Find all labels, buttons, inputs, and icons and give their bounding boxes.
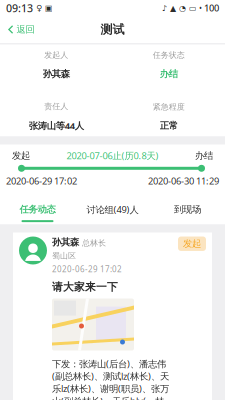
staticText: 孙其森 [43,68,70,80]
staticText: 总林长 [82,238,106,248]
staticText: 测试 [100,22,124,37]
staticText: 发起 [12,150,30,161]
staticText: 讨论组(49)人 [86,203,138,216]
staticText: 2020-06-30 11:29 [148,175,219,187]
staticText: 2020-06-29 17:02 [6,175,77,187]
staticText: 任务动态 [19,204,55,215]
staticText: 发起人 [44,50,68,60]
staticText: 100 [202,2,219,14]
staticText: 2020-06-29 17:02 [52,264,122,274]
staticText: 2020-07-06止(历0.8天) [66,149,158,162]
staticText: ♀ ▣ [33,3,53,13]
staticText: 办结 [195,150,213,161]
staticText: 到现场 [174,204,201,215]
staticText: 紧急程度 [153,102,185,112]
staticText: 孙其森 [52,236,79,248]
staticText: 任务状态 [153,50,185,60]
staticText: 责任人 [44,101,68,111]
button[interactable]: 返回 [0,18,42,41]
button[interactable]: 到现场 [150,204,225,222]
staticText: ♪ ▲ ◔ ▭ • [162,3,202,13]
staticText: 请大家来一下 [52,280,118,293]
button[interactable]: 任务动态 [0,204,75,222]
staticText: 张涛山等44人 [29,119,84,132]
staticText: 09:13 [6,1,33,15]
staticText: 发起 [183,238,201,249]
staticText: 下发：张涛山(后台)、潘志伟(副总林长)、测试lz(林长)、天乐lz(林长)、谢… [52,357,173,400]
staticText: 蜀山区 [52,251,76,261]
staticText: 正常 [160,120,178,131]
staticText: 办结 [160,68,178,80]
button[interactable]: 讨论组(49)人 [75,203,150,223]
staticText: 返回 [16,24,34,35]
